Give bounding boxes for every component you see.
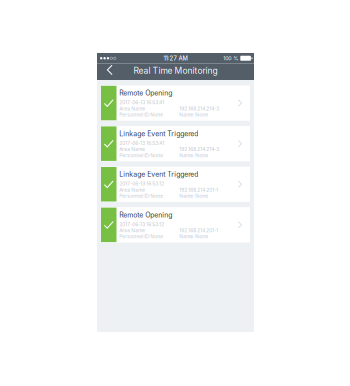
staticText: 2017-06-13 16:53:41 (119, 140, 164, 146)
staticText: 11:27 AM (163, 55, 187, 62)
staticText: 100 % (223, 55, 238, 61)
staticText: Area Name (119, 187, 145, 193)
staticText: Name: None (179, 152, 208, 158)
staticText: Remote Opening (119, 211, 172, 219)
staticText: 192.168.214.201-1 (179, 187, 218, 193)
staticText: Real Time Monitoring (133, 65, 217, 76)
button[interactable]: Linkage Event Triggered (101, 167, 250, 202)
staticText: 192.168.214.201-1 (179, 228, 218, 233)
staticText: Area Name (119, 228, 145, 233)
staticText: Linkage Event Triggered (119, 170, 198, 178)
staticText: 192.168.214.214-3 (179, 146, 219, 152)
staticText: 2017-06-13 16:53:12 (119, 221, 164, 227)
button[interactable]: Remote Opening (101, 85, 250, 121)
button[interactable]: Back (97, 62, 120, 81)
staticText: 2017-06-13 16:53:41 (119, 100, 164, 105)
staticText: Remote Opening (119, 89, 172, 97)
staticText: 192.168.214.214-3 (179, 106, 219, 112)
button[interactable]: Remote Opening (101, 207, 250, 242)
staticText: 2017-06-13 16:53:12 (119, 181, 164, 187)
staticText: Personnel ID: None (119, 234, 163, 239)
staticText: Name: None (179, 193, 208, 199)
staticText: Personnel ID: None (119, 152, 163, 158)
staticText: Name: None (179, 234, 208, 239)
button[interactable]: Linkage Event Triggered (101, 126, 250, 161)
staticText: Personnel ID: None (119, 193, 163, 199)
staticText: Name: None (179, 112, 208, 118)
staticText: Personnel ID: None (119, 112, 163, 118)
staticText: Area Name (119, 146, 145, 152)
staticText: Area Name (119, 106, 145, 112)
staticText: Linkage Event Triggered (119, 129, 198, 138)
